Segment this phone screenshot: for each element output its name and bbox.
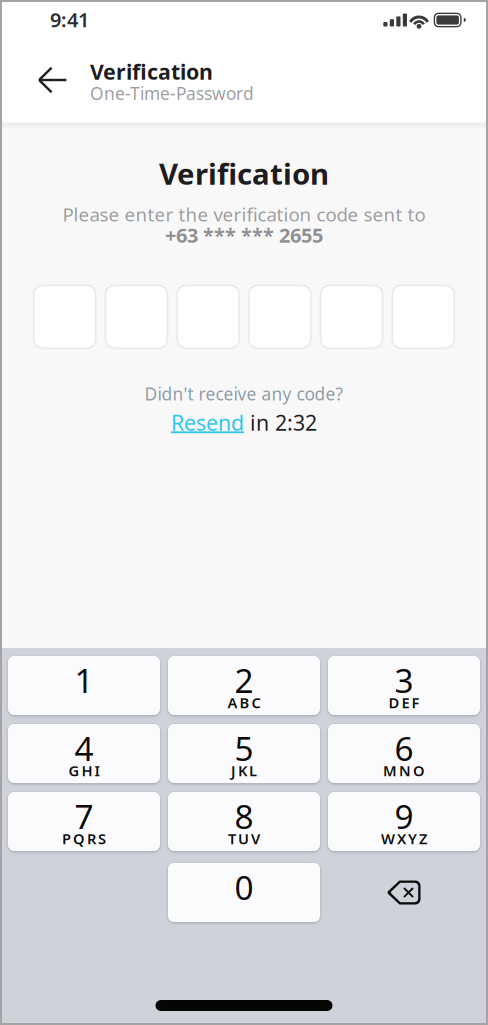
- staticText: Verification: [159, 154, 329, 193]
- button[interactable]: 9: [328, 792, 480, 851]
- staticText: 1: [74, 658, 93, 702]
- button[interactable]: 8: [168, 792, 320, 851]
- staticText: 2: [234, 658, 253, 702]
- staticText: Please enter the verification code sent …: [62, 202, 425, 227]
- staticText: T U V: [228, 829, 260, 848]
- staticText: 3: [394, 658, 413, 702]
- staticText: 5: [234, 726, 253, 770]
- staticText: 0: [234, 865, 253, 909]
- staticText: 9:41: [50, 6, 89, 33]
- staticText: 6: [394, 726, 413, 770]
- staticText: G H I: [68, 761, 99, 780]
- button[interactable]: 2: [168, 656, 320, 715]
- staticText: P Q R S: [62, 829, 106, 848]
- button[interactable]: 4: [8, 724, 160, 783]
- staticText: 9: [394, 794, 413, 838]
- button[interactable]: Resend: [171, 408, 244, 437]
- staticText: Verification: [90, 57, 213, 86]
- staticText: 8: [234, 794, 253, 838]
- staticText: Didn't receive any code?: [144, 382, 343, 405]
- button[interactable]: Back: [24, 56, 76, 110]
- button[interactable]: 3: [328, 656, 480, 715]
- staticText: One-Time-Password: [90, 82, 254, 105]
- staticText: D E F: [388, 693, 419, 712]
- staticText: in 2:32: [244, 408, 317, 437]
- button[interactable]: Delete: [328, 863, 480, 922]
- button[interactable]: 1: [8, 656, 160, 715]
- button[interactable]: 5: [168, 724, 320, 783]
- button[interactable]: 7: [8, 792, 160, 851]
- staticText: A B C: [227, 693, 260, 712]
- staticText: +63 *** *** 2655: [165, 222, 323, 248]
- staticText: J K L: [231, 761, 257, 780]
- staticText: W X Y Z: [381, 829, 427, 848]
- staticText: 7: [74, 794, 93, 838]
- staticText: M N O: [383, 761, 425, 780]
- button[interactable]: 6: [328, 724, 480, 783]
- staticText: 4: [74, 726, 93, 770]
- staticText: Resend: [171, 408, 244, 437]
- button[interactable]: 0: [168, 863, 320, 922]
